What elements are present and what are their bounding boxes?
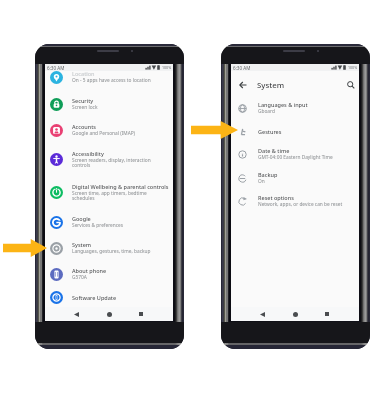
staticText: Accessibility bbox=[72, 150, 104, 157]
button[interactable]: Backup bbox=[231, 166, 359, 190]
staticText: On - 5 apps have access to location bbox=[72, 77, 151, 84]
staticText: Location bbox=[72, 70, 95, 77]
staticText: Google bbox=[72, 215, 91, 222]
staticText: About phone bbox=[72, 267, 107, 274]
button[interactable]: Back bbox=[67, 307, 85, 321]
staticText: On bbox=[258, 178, 265, 185]
button[interactable]: Home bbox=[100, 307, 118, 321]
staticText: Network, apps, or device can be reset bbox=[258, 201, 343, 208]
staticText: Screen time, app timers, bedtime schedul… bbox=[72, 190, 147, 202]
staticText: Screen lock bbox=[72, 104, 98, 111]
staticText: Date & time bbox=[258, 147, 290, 154]
staticText: Backup bbox=[258, 171, 278, 178]
staticText: Gestures bbox=[258, 128, 282, 135]
button[interactable]: Accessibility bbox=[45, 143, 173, 175]
staticText: Languages, gestures, time, backup bbox=[72, 248, 151, 255]
button[interactable]: About phone bbox=[45, 261, 173, 287]
button[interactable]: Date & time bbox=[231, 142, 359, 166]
button[interactable]: Home bbox=[286, 307, 304, 321]
button[interactable]: Accounts bbox=[45, 117, 173, 143]
staticText: 100% bbox=[348, 65, 358, 70]
button[interactable]: Gestures bbox=[231, 120, 359, 142]
staticText: System bbox=[72, 241, 92, 248]
staticText: Gboard bbox=[258, 108, 275, 115]
button[interactable]: Languages & input bbox=[231, 96, 359, 120]
button[interactable]: Reset options bbox=[231, 189, 359, 213]
button[interactable]: Search bbox=[346, 80, 356, 90]
staticText: Digital Wellbeing & parental controls bbox=[72, 183, 169, 190]
button[interactable]: Back bbox=[253, 307, 271, 321]
staticText: 6:30 AM bbox=[233, 65, 251, 71]
staticText: Software Update bbox=[72, 294, 117, 301]
button[interactable]: System bbox=[45, 235, 173, 261]
staticText: System bbox=[257, 80, 285, 91]
staticText: Languages & input bbox=[258, 101, 308, 108]
staticText: Screen readers, display, interaction con… bbox=[72, 157, 151, 169]
staticText: Accounts bbox=[72, 123, 97, 130]
staticText: Reset options bbox=[258, 194, 294, 201]
button[interactable]: Digital Wellbeing & parental controls bbox=[45, 176, 173, 208]
staticText: GMT-04:00 Eastern Daylight Time bbox=[258, 154, 333, 161]
button[interactable]: Recents bbox=[132, 307, 150, 321]
staticText: Google and Personal (IMAP) bbox=[72, 130, 136, 137]
button[interactable]: Software Update bbox=[45, 287, 173, 307]
button[interactable]: Location bbox=[45, 67, 173, 87]
button[interactable]: Recents bbox=[318, 307, 336, 321]
button[interactable]: Back bbox=[238, 80, 248, 90]
staticText: 100% bbox=[162, 65, 172, 70]
staticText: G570A bbox=[72, 274, 87, 281]
staticText: Security bbox=[72, 97, 94, 104]
button[interactable]: Google bbox=[45, 209, 173, 235]
button[interactable]: Security bbox=[45, 91, 173, 117]
staticText: 6:30 AM bbox=[47, 65, 65, 71]
staticText: Services & preferences bbox=[72, 222, 124, 229]
